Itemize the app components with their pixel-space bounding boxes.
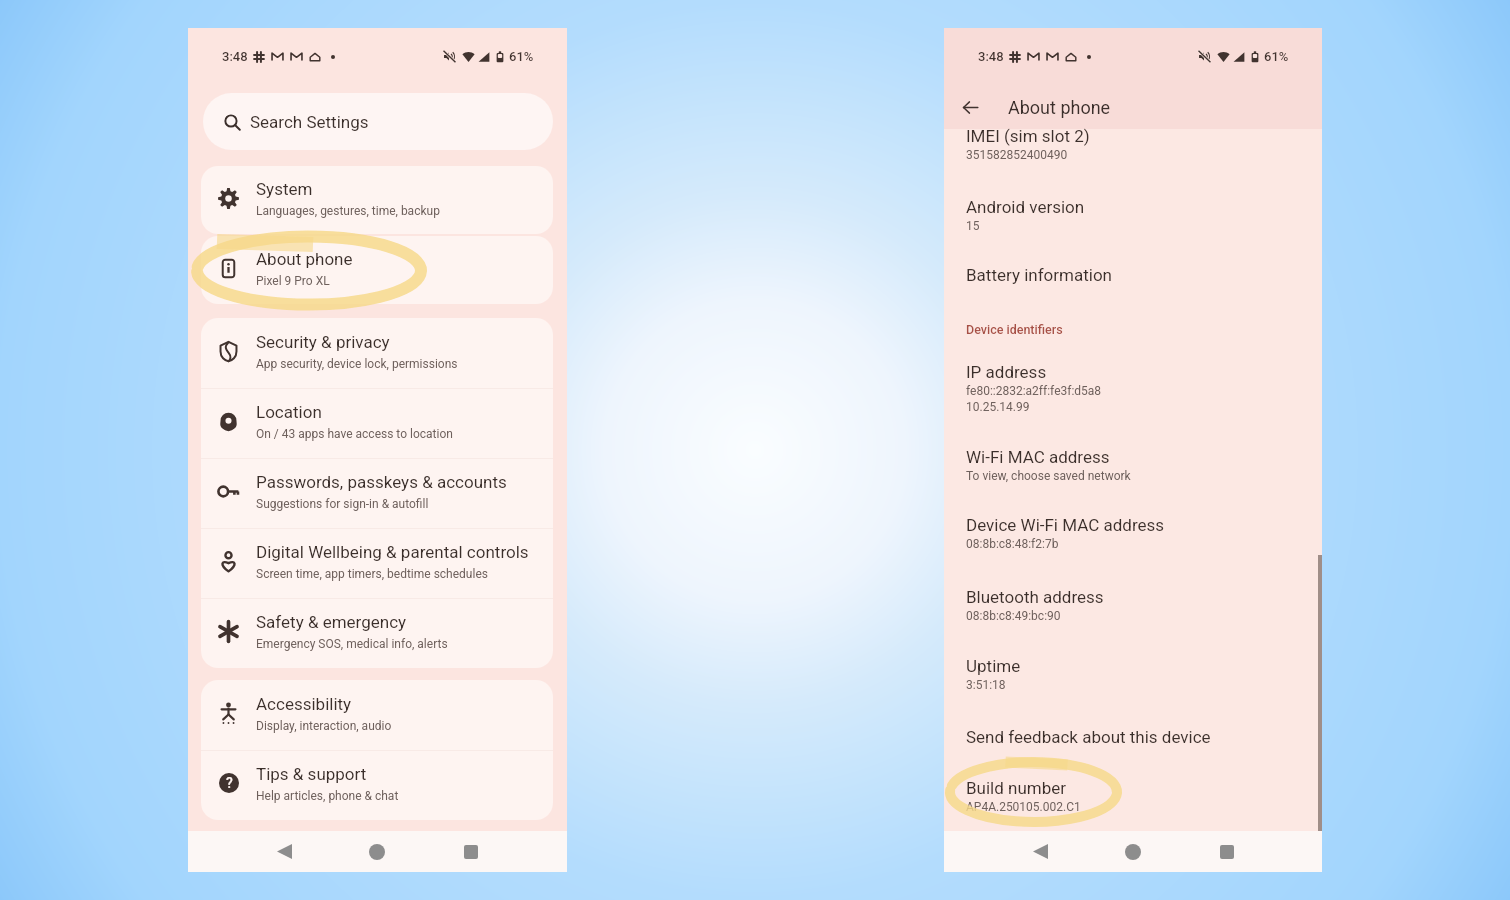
staticText: 08:8b:c8:49:bc:90 (966, 609, 1061, 623)
button[interactable]: ? (201, 750, 553, 820)
staticText: App security, device lock, permissions (256, 357, 458, 371)
staticText: Device identifiers (966, 322, 1063, 337)
staticText: Android version (966, 197, 1085, 217)
staticText: IP address (966, 362, 1047, 382)
staticText: fe80::2832:a2ff:fe3f:d5a8 (966, 384, 1102, 398)
button[interactable]: Digital Wellbeing & parental controls (201, 528, 553, 598)
button[interactable]: Device Wi-Fi MAC address (966, 515, 1344, 551)
staticText: Wi-Fi MAC address (966, 447, 1110, 467)
staticText: Build number (966, 778, 1067, 798)
button[interactable]: Uptime (966, 656, 1344, 692)
staticText: Send feedback about this device (966, 727, 1211, 747)
button[interactable]: System (201, 166, 553, 234)
staticText: About phone (256, 249, 353, 269)
staticText: 3:51:18 (966, 678, 1006, 692)
button[interactable]: Recent apps (1205, 831, 1249, 872)
button[interactable]: Bluetooth address (966, 587, 1344, 623)
staticText: Passwords, passkeys & accounts (256, 472, 507, 492)
staticText: Languages, gestures, time, backup (256, 204, 440, 218)
staticText: Safety & emergency (256, 612, 407, 632)
staticText: To view, choose saved network (966, 469, 1131, 483)
staticText: 3:48 (978, 49, 1004, 64)
staticText: Screen time, app timers, bedtime schedul… (256, 567, 488, 581)
staticText: Battery information (966, 265, 1112, 285)
button[interactable]: About phone (201, 236, 553, 304)
button[interactable]: Passwords, passkeys & accounts (201, 458, 553, 528)
button[interactable]: Back (949, 86, 991, 128)
staticText: 351582852400490 (966, 148, 1068, 162)
button[interactable]: Send feedback about this device (966, 727, 1344, 747)
staticText: Emergency SOS, medical info, alerts (256, 637, 448, 651)
button[interactable]: Accessibility (201, 680, 553, 750)
button[interactable]: Location (201, 388, 553, 458)
staticText: Bluetooth address (966, 587, 1104, 607)
staticText: Location (256, 402, 322, 422)
staticText: 08:8b:c8:48:f2:7b (966, 537, 1059, 551)
staticText: 15 (966, 219, 980, 233)
button[interactable]: Battery information (966, 265, 1344, 285)
button[interactable]: Search Settings (203, 93, 553, 150)
button[interactable]: IMEI (sim slot 2) (966, 126, 1344, 162)
button[interactable]: Recent apps (449, 831, 493, 872)
staticText: System (256, 179, 313, 199)
staticText: Display, interaction, audio (256, 719, 392, 733)
button[interactable]: Back (1018, 831, 1062, 872)
staticText: 61% (509, 49, 534, 64)
button[interactable]: Back (262, 831, 306, 872)
button[interactable]: Safety & emergency (201, 598, 553, 668)
button[interactable]: Security & privacy (201, 318, 553, 388)
button[interactable]: Home (355, 831, 399, 872)
staticText: Help articles, phone & chat (256, 789, 399, 803)
button[interactable]: Android version (966, 197, 1344, 233)
staticText: Search Settings (250, 112, 369, 132)
staticText: Device Wi-Fi MAC address (966, 515, 1165, 535)
staticText: IMEI (sim slot 2) (966, 126, 1090, 146)
staticText: Tips & support (256, 764, 367, 784)
staticText: Suggestions for sign-in & autofill (256, 497, 429, 511)
staticText: Security & privacy (256, 332, 390, 352)
staticText: 3:48 (222, 49, 248, 64)
staticText: AP4A.250105.002.C1 (966, 800, 1081, 814)
button[interactable]: Build number (966, 778, 1344, 814)
staticText: ? (226, 775, 233, 791)
staticText: About phone (1008, 97, 1111, 118)
staticText: 61% (1264, 49, 1289, 64)
button[interactable]: Home (1111, 831, 1155, 872)
button[interactable]: IP address (966, 362, 1344, 414)
staticText: 10.25.14.99 (966, 400, 1030, 414)
staticText: Digital Wellbeing & parental controls (256, 542, 529, 562)
staticText: Uptime (966, 656, 1021, 676)
button[interactable]: Wi-Fi MAC address (966, 447, 1344, 483)
staticText: Accessibility (256, 694, 352, 714)
staticText: On / 43 apps have access to location (256, 427, 453, 441)
staticText: Pixel 9 Pro XL (256, 274, 330, 288)
